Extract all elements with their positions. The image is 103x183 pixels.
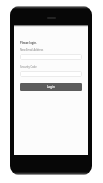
staticText: Login bbox=[47, 85, 55, 89]
staticText: Security Code bbox=[20, 65, 37, 69]
button[interactable]: New Email Address input field bbox=[20, 54, 82, 60]
button[interactable]: Login bbox=[20, 83, 82, 91]
staticText: New Email Address bbox=[20, 48, 44, 52]
staticText: Please login. bbox=[20, 41, 37, 45]
button[interactable]: Security Code input field bbox=[20, 71, 82, 77]
